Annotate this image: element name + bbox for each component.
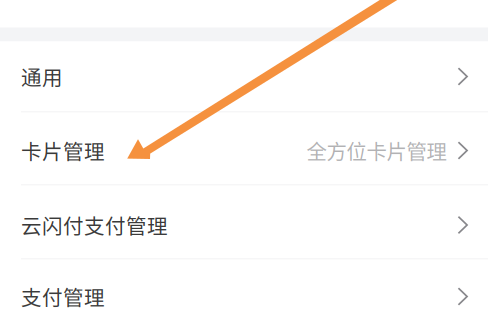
staticText: 通用 — [21, 62, 63, 91]
button[interactable]: 云闪付支付管理 — [0, 185, 488, 258]
staticText: 卡片管理 — [21, 136, 105, 165]
button[interactable]: 通用 — [0, 41, 488, 111]
staticText: 云闪付支付管理 — [21, 210, 168, 240]
button[interactable]: 支付管理 — [0, 259, 488, 321]
button[interactable]: 卡片管理 — [0, 112, 488, 184]
staticText: 全方位卡片管理 — [306, 136, 446, 165]
staticText: 支付管理 — [21, 282, 105, 311]
